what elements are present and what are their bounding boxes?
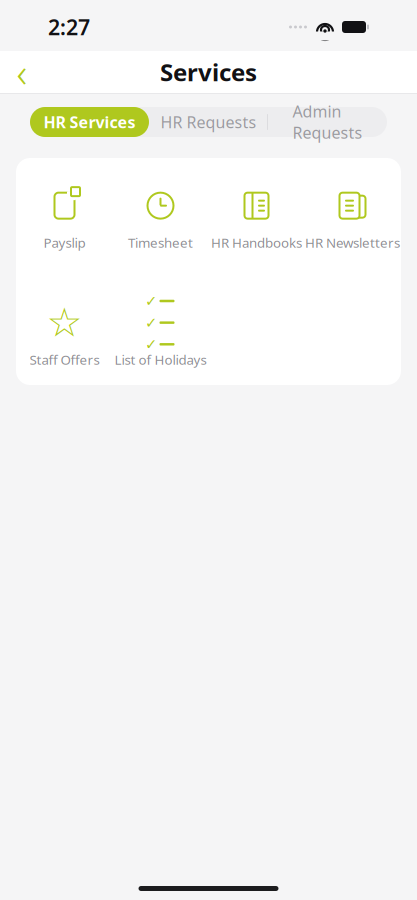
- button[interactable]: HR Services: [30, 107, 149, 137]
- staticText: Payslip: [43, 234, 85, 251]
- staticText: Staff Offers: [29, 351, 99, 368]
- button[interactable]: ✓: [112, 299, 208, 375]
- staticText: ✓: [145, 293, 157, 309]
- button[interactable]: Back: [0, 52, 44, 92]
- button[interactable]: HR Handbooks: [208, 182, 304, 258]
- staticText: HR Handbooks: [211, 234, 302, 251]
- staticText: ✓: [145, 336, 157, 353]
- staticText: HR Newsletters: [305, 234, 400, 251]
- button[interactable]: Payslip: [16, 182, 112, 258]
- staticText: ✓: [145, 314, 157, 331]
- staticText: HR Requests: [160, 111, 256, 133]
- button[interactable]: Timesheet: [112, 182, 208, 258]
- staticText: Admin Requests: [292, 101, 362, 143]
- staticText: 2:27: [48, 13, 90, 41]
- staticText: List of Holidays: [114, 351, 206, 368]
- staticText: Timesheet: [128, 234, 193, 251]
- staticText: HR Services: [43, 111, 135, 133]
- button[interactable]: Admin Requests: [268, 107, 387, 137]
- button[interactable]: HR Newsletters: [304, 182, 400, 258]
- button[interactable]: HR Requests: [149, 107, 268, 137]
- staticText: ‹: [16, 45, 27, 98]
- button[interactable]: ☆: [16, 299, 112, 375]
- staticText: ☆: [46, 300, 82, 345]
- staticText: Services: [160, 56, 257, 88]
